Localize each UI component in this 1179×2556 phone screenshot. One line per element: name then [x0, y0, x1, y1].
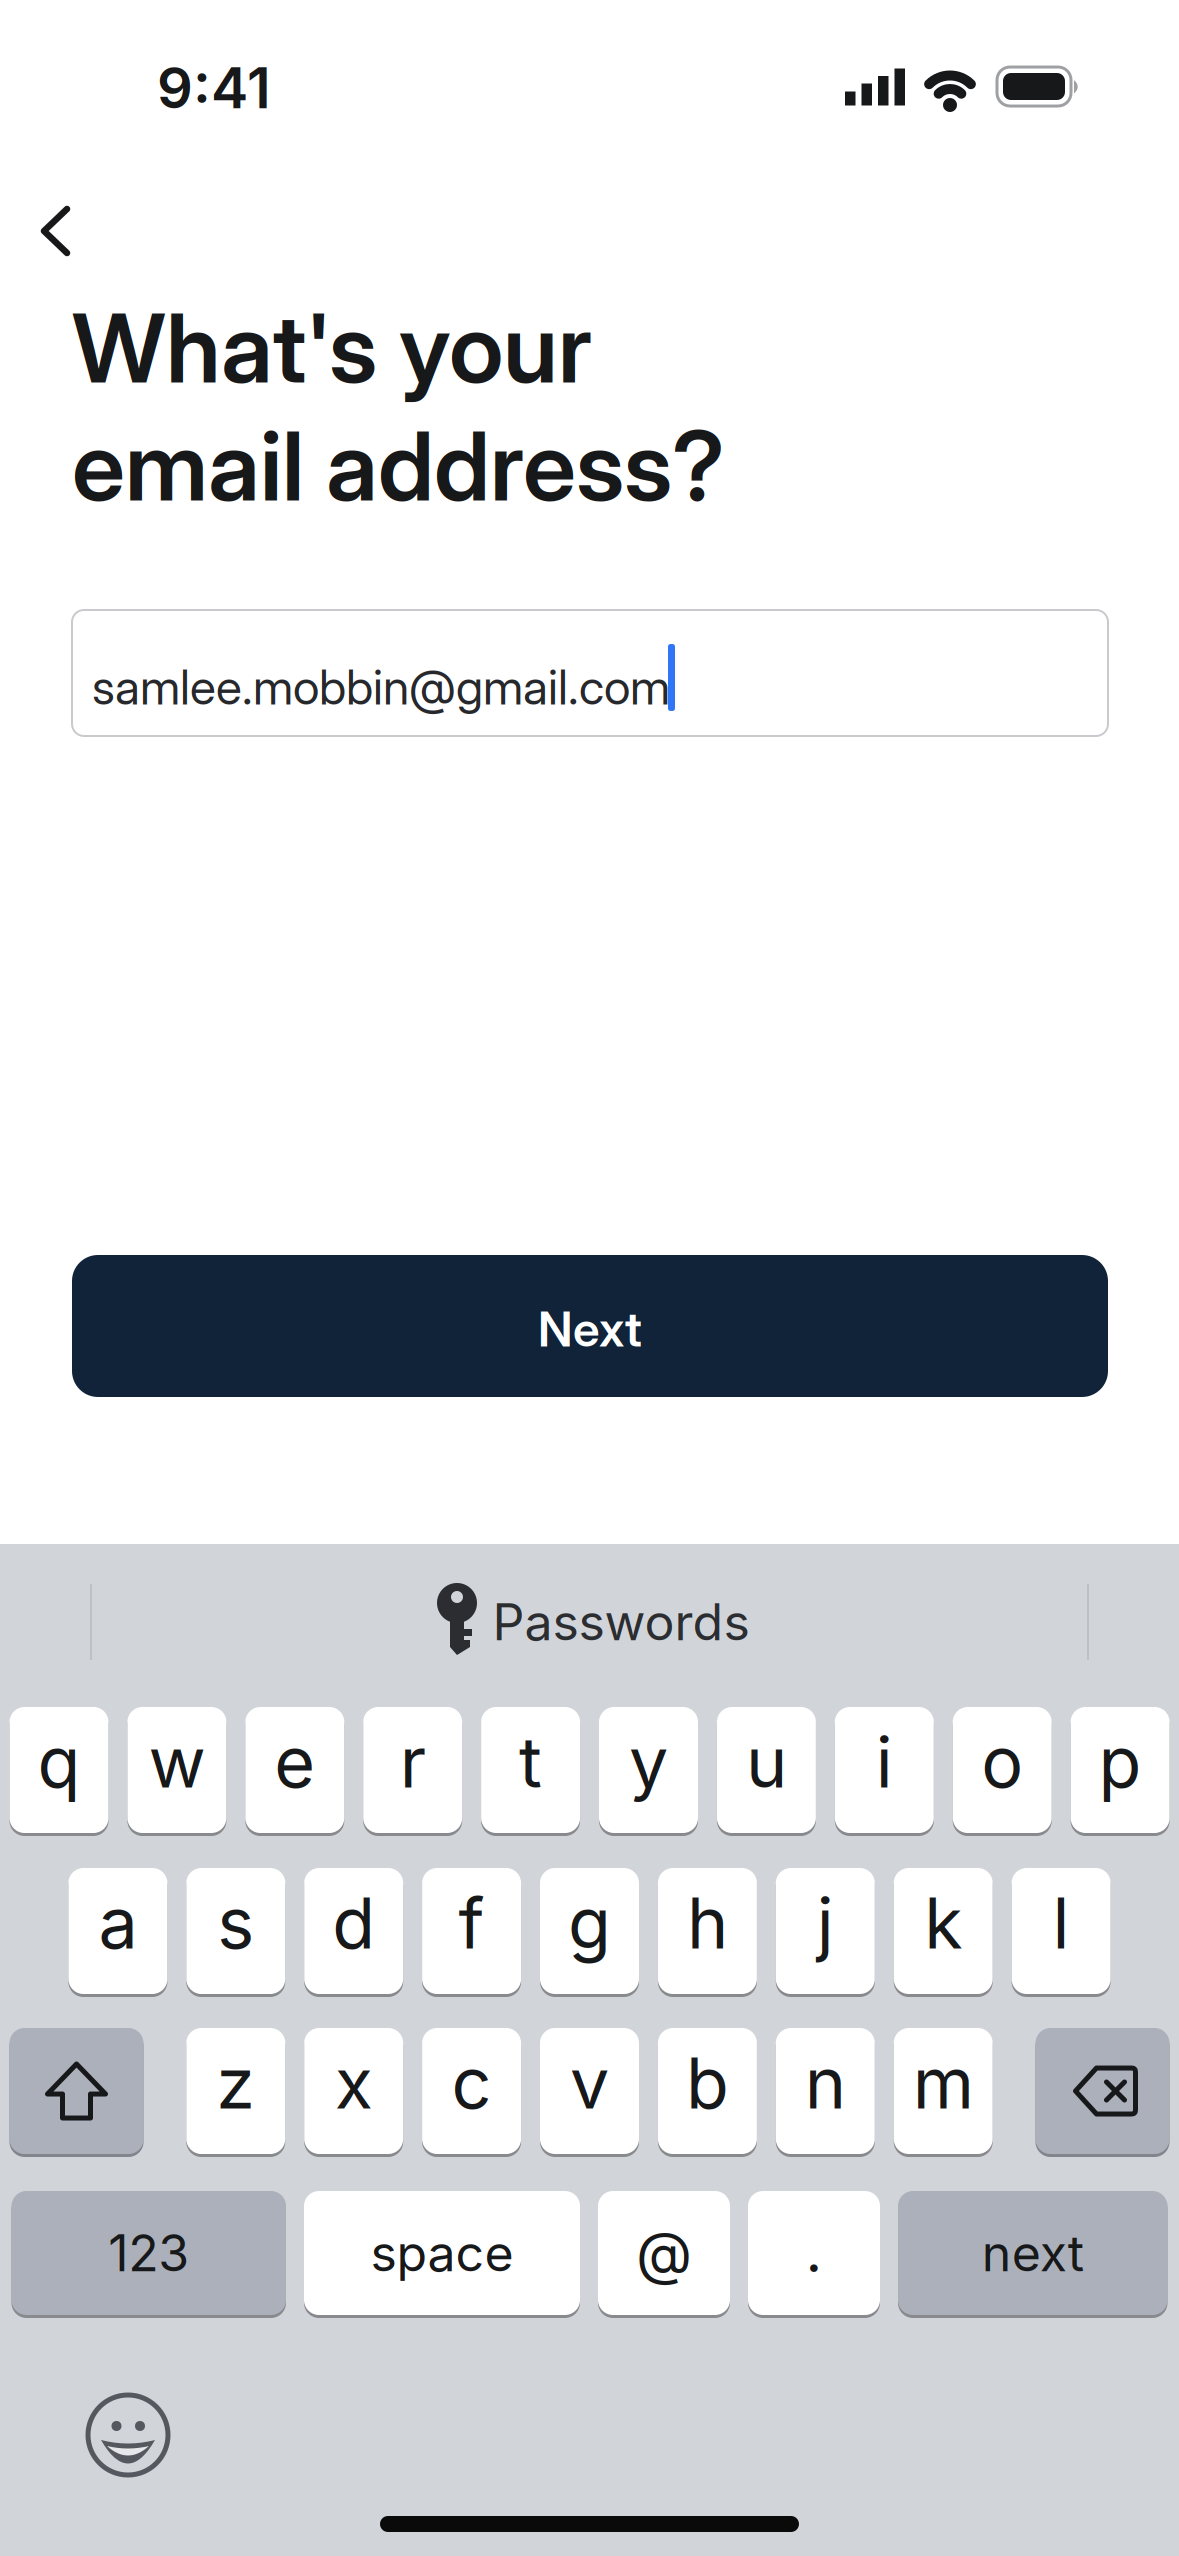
- button[interactable]: e: [245, 1707, 344, 1833]
- button[interactable]: m: [894, 2028, 993, 2154]
- button[interactable]: 123: [11, 2191, 286, 2315]
- staticText: g: [568, 1881, 611, 1965]
- button[interactable]: z: [186, 2028, 285, 2154]
- staticText: d: [332, 1881, 375, 1965]
- button[interactable]: Passwords: [420, 1577, 780, 1667]
- button[interactable]: next: [898, 2191, 1167, 2315]
- button[interactable]: o: [953, 1707, 1052, 1833]
- staticText: w: [148, 1720, 205, 1804]
- staticText: next: [982, 2223, 1084, 2283]
- button[interactable]: p: [1071, 1707, 1170, 1833]
- staticText: Passwords: [492, 1592, 749, 1652]
- button[interactable]: k: [894, 1868, 993, 1994]
- staticText: h: [687, 1881, 728, 1965]
- button[interactable]: Next: [72, 1255, 1108, 1397]
- staticText: What's your: [72, 290, 592, 406]
- staticText: a: [98, 1881, 137, 1965]
- staticText: i: [876, 1720, 893, 1804]
- button[interactable]: b: [658, 2028, 757, 2154]
- button[interactable]: v: [540, 2028, 639, 2154]
- button[interactable]: s: [186, 1868, 285, 1994]
- button[interactable]: Emoji: [80, 2387, 176, 2483]
- staticText: l: [1053, 1881, 1070, 1965]
- staticText: m: [913, 2041, 974, 2125]
- button[interactable]: d: [304, 1868, 403, 1994]
- staticText: 9:41: [157, 54, 271, 122]
- button[interactable]: .: [748, 2191, 880, 2315]
- staticText: s: [217, 1881, 254, 1965]
- button[interactable]: l: [1012, 1868, 1111, 1994]
- staticText: space: [370, 2223, 513, 2283]
- staticText: r: [400, 1720, 426, 1804]
- button[interactable]: f: [422, 1868, 521, 1994]
- staticText: o: [981, 1720, 1023, 1804]
- staticText: Next: [538, 1300, 642, 1358]
- staticText: b: [686, 2041, 729, 2125]
- staticText: t: [519, 1720, 542, 1804]
- button[interactable]: a: [68, 1868, 167, 1994]
- button[interactable]: Delete: [1035, 2028, 1169, 2154]
- button[interactable]: Shift: [9, 2028, 143, 2154]
- button[interactable]: space: [304, 2191, 580, 2315]
- button[interactable]: j: [776, 1868, 875, 1994]
- staticText: 123: [108, 2223, 189, 2283]
- button[interactable]: g: [540, 1868, 639, 1994]
- button[interactable]: c: [422, 2028, 521, 2154]
- button[interactable]: w: [127, 1707, 226, 1833]
- button[interactable]: r: [363, 1707, 462, 1833]
- button[interactable]: Back: [42, 207, 70, 255]
- button[interactable]: h: [658, 1868, 757, 1994]
- button[interactable]: y: [599, 1707, 698, 1833]
- button[interactable]: t: [481, 1707, 580, 1833]
- staticText: .: [805, 2216, 822, 2286]
- staticText: f: [459, 1881, 485, 1965]
- staticText: y: [629, 1720, 668, 1804]
- staticText: c: [452, 2041, 492, 2125]
- staticText: x: [335, 2041, 373, 2125]
- button[interactable]: n: [776, 2028, 875, 2154]
- staticText: e: [274, 1720, 315, 1804]
- staticText: email address?: [72, 408, 725, 524]
- button[interactable]: i: [835, 1707, 934, 1833]
- staticText: k: [924, 1881, 962, 1965]
- staticText: v: [570, 2041, 609, 2125]
- staticText: n: [805, 2041, 846, 2125]
- staticText: z: [216, 2041, 255, 2125]
- staticText: @: [636, 2218, 692, 2288]
- button[interactable]: @: [598, 2191, 730, 2315]
- button[interactable]: u: [717, 1707, 816, 1833]
- staticText: u: [746, 1720, 787, 1804]
- button[interactable]: x: [304, 2028, 403, 2154]
- staticText: samlee.mobbin@gmail.com: [92, 658, 670, 716]
- staticText: p: [1099, 1720, 1142, 1804]
- staticText: j: [817, 1881, 834, 1965]
- staticText: q: [37, 1720, 80, 1804]
- button[interactable]: q: [9, 1707, 108, 1833]
